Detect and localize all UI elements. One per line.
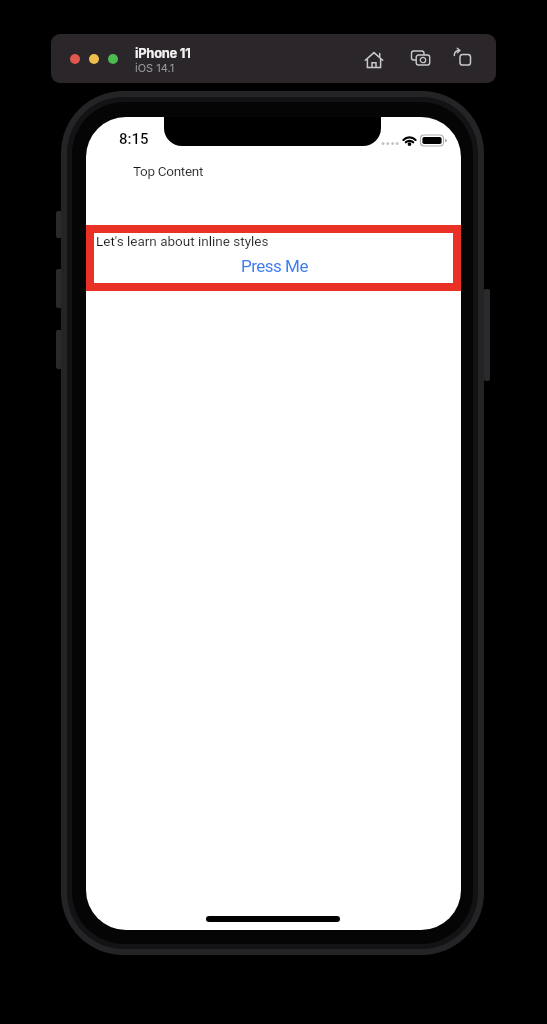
staticText: Press Me (241, 256, 308, 276)
staticText: iPhone 11 (135, 45, 191, 61)
button[interactable] (359, 45, 389, 75)
staticText: 8:15 (119, 130, 149, 148)
staticText: Let's learn about inline styles (96, 233, 269, 249)
staticText: Top Content (133, 163, 204, 179)
button[interactable]: Press Me (219, 249, 329, 283)
button[interactable] (406, 44, 436, 74)
button[interactable] (447, 44, 477, 74)
staticText: iOS 14.1 (135, 61, 175, 74)
